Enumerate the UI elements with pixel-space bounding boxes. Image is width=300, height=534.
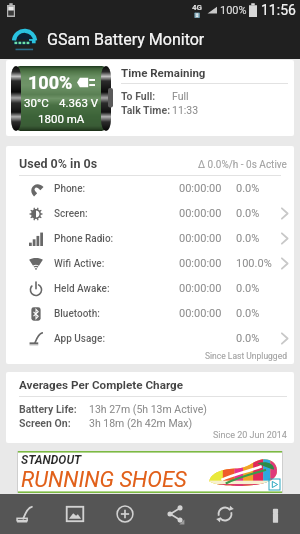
- staticText: 0.0%: [236, 207, 260, 220]
- button[interactable]: Screenshot: [50, 494, 100, 534]
- staticText: Screen:: [54, 208, 88, 220]
- staticText: ↕: [194, 12, 201, 18]
- staticText: Since 20 Jun 2014: [213, 430, 287, 441]
- button[interactable]: STANDOUT: [17, 451, 283, 493]
- staticText: 00:00:00: [179, 257, 222, 270]
- button[interactable]: Phone:: [6, 176, 294, 201]
- staticText: Battery Life:: [19, 403, 77, 415]
- button[interactable]: Held Awake:: [6, 276, 294, 301]
- staticText: 0.0%: [236, 182, 260, 195]
- staticText: 00:00:00: [179, 282, 222, 295]
- staticText: 11:56: [261, 2, 296, 18]
- staticText: 100%: [220, 4, 247, 17]
- staticText: 0.0%: [236, 232, 260, 245]
- staticText: 4.363 V: [59, 96, 99, 109]
- button[interactable]: Averages Per Complete Charge: [6, 372, 294, 443]
- staticText: Phone Radio:: [54, 233, 114, 245]
- staticText: Δ 0.0%/h - 0s Active: [198, 159, 287, 171]
- button[interactable]: App Usage:: [6, 326, 294, 351]
- staticText: Time Remaining: [121, 66, 206, 79]
- staticText: 00:00:00: [179, 207, 222, 220]
- staticText: 30°C: [24, 96, 49, 109]
- staticText: Talk Time:: [121, 104, 171, 116]
- staticText: 0.0%: [236, 307, 260, 320]
- staticText: 3h 18m (2h 42m Max): [89, 417, 193, 429]
- button[interactable]: More options: [250, 494, 300, 534]
- staticText: 4G: [192, 3, 203, 12]
- staticText: 0.0%: [236, 332, 260, 345]
- staticText: Screen On:: [19, 417, 71, 429]
- button[interactable]: Refresh: [200, 494, 250, 534]
- staticText: RUNNING SHOES: [21, 467, 187, 493]
- staticText: Phone:: [54, 183, 86, 195]
- button[interactable]: 100%: [6, 60, 294, 136]
- staticText: App Usage:: [54, 333, 106, 345]
- button[interactable]: GSam Battery Monitor: [0, 20, 300, 59]
- staticText: STANDOUT: [21, 453, 82, 467]
- staticText: Used 0% in 0s: [19, 156, 98, 171]
- button[interactable]: Bluetooth:: [6, 301, 294, 326]
- staticText: 1800 mA: [38, 112, 85, 125]
- button[interactable]: Screen:: [6, 201, 294, 226]
- staticText: 100%: [28, 72, 73, 93]
- staticText: 00:00:00: [179, 307, 222, 320]
- button[interactable]: Share: [150, 494, 200, 534]
- staticText: 100.0%: [236, 257, 272, 270]
- staticText: GSam Battery Monitor: [47, 30, 205, 49]
- staticText: 13h 27m (5h 13m Active): [89, 403, 207, 415]
- staticText: 00:00:00: [179, 182, 222, 195]
- button[interactable]: Add: [100, 494, 150, 534]
- staticText: Wifi Active:: [54, 258, 105, 270]
- staticText: Averages Per Complete Charge: [19, 378, 184, 392]
- staticText: To Full:: [121, 90, 156, 102]
- button[interactable]: Wifi Active:: [6, 251, 294, 276]
- staticText: Full: [172, 90, 189, 102]
- button[interactable]: App usage chart: [0, 494, 50, 534]
- button[interactable]: Phone Radio:: [6, 226, 294, 251]
- staticText: Since Last Unplugged: [205, 351, 287, 361]
- staticText: 00:00:00: [179, 232, 222, 245]
- staticText: 11:33: [172, 104, 199, 116]
- staticText: Held Awake:: [54, 283, 110, 295]
- staticText: 0.0%: [236, 282, 260, 295]
- staticText: Bluetooth:: [54, 308, 100, 320]
